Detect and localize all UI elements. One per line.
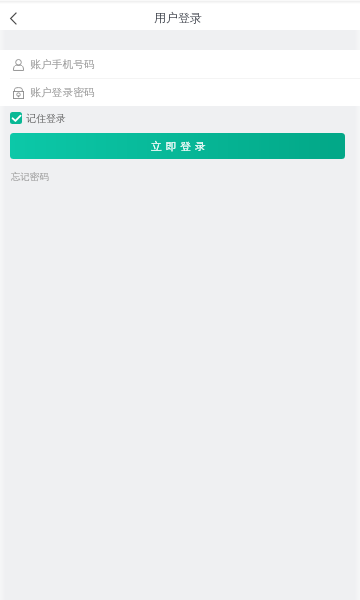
staticText: 账户手机号码	[30, 58, 95, 72]
button[interactable]: 账户登录密码	[0, 79, 360, 106]
staticText: 立即登录	[151, 140, 210, 154]
button[interactable]: 账户手机号码	[0, 51, 360, 78]
button[interactable]: 记住登录	[10, 111, 66, 125]
staticText: 记住登录	[26, 112, 66, 125]
button[interactable]: 立即登录	[10, 133, 345, 159]
staticText: 用户登录	[154, 10, 202, 25]
button[interactable]: Back	[0, 0, 32, 30]
button[interactable]: 忘记密码	[11, 171, 49, 183]
staticText: 账户登录密码	[30, 86, 95, 100]
